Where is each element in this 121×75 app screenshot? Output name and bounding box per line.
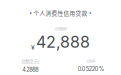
staticText: 日利率: [86, 59, 95, 64]
staticText: 42888: [22, 66, 38, 73]
staticText: 42,888: [36, 32, 90, 51]
staticText: ¥: [31, 43, 35, 51]
staticText: 个人消费性信用贷款: [33, 9, 87, 17]
staticText: 0.05220%: [78, 66, 104, 72]
staticText: 总额度(元): [21, 58, 39, 64]
staticText: 可用额度: [54, 26, 66, 31]
